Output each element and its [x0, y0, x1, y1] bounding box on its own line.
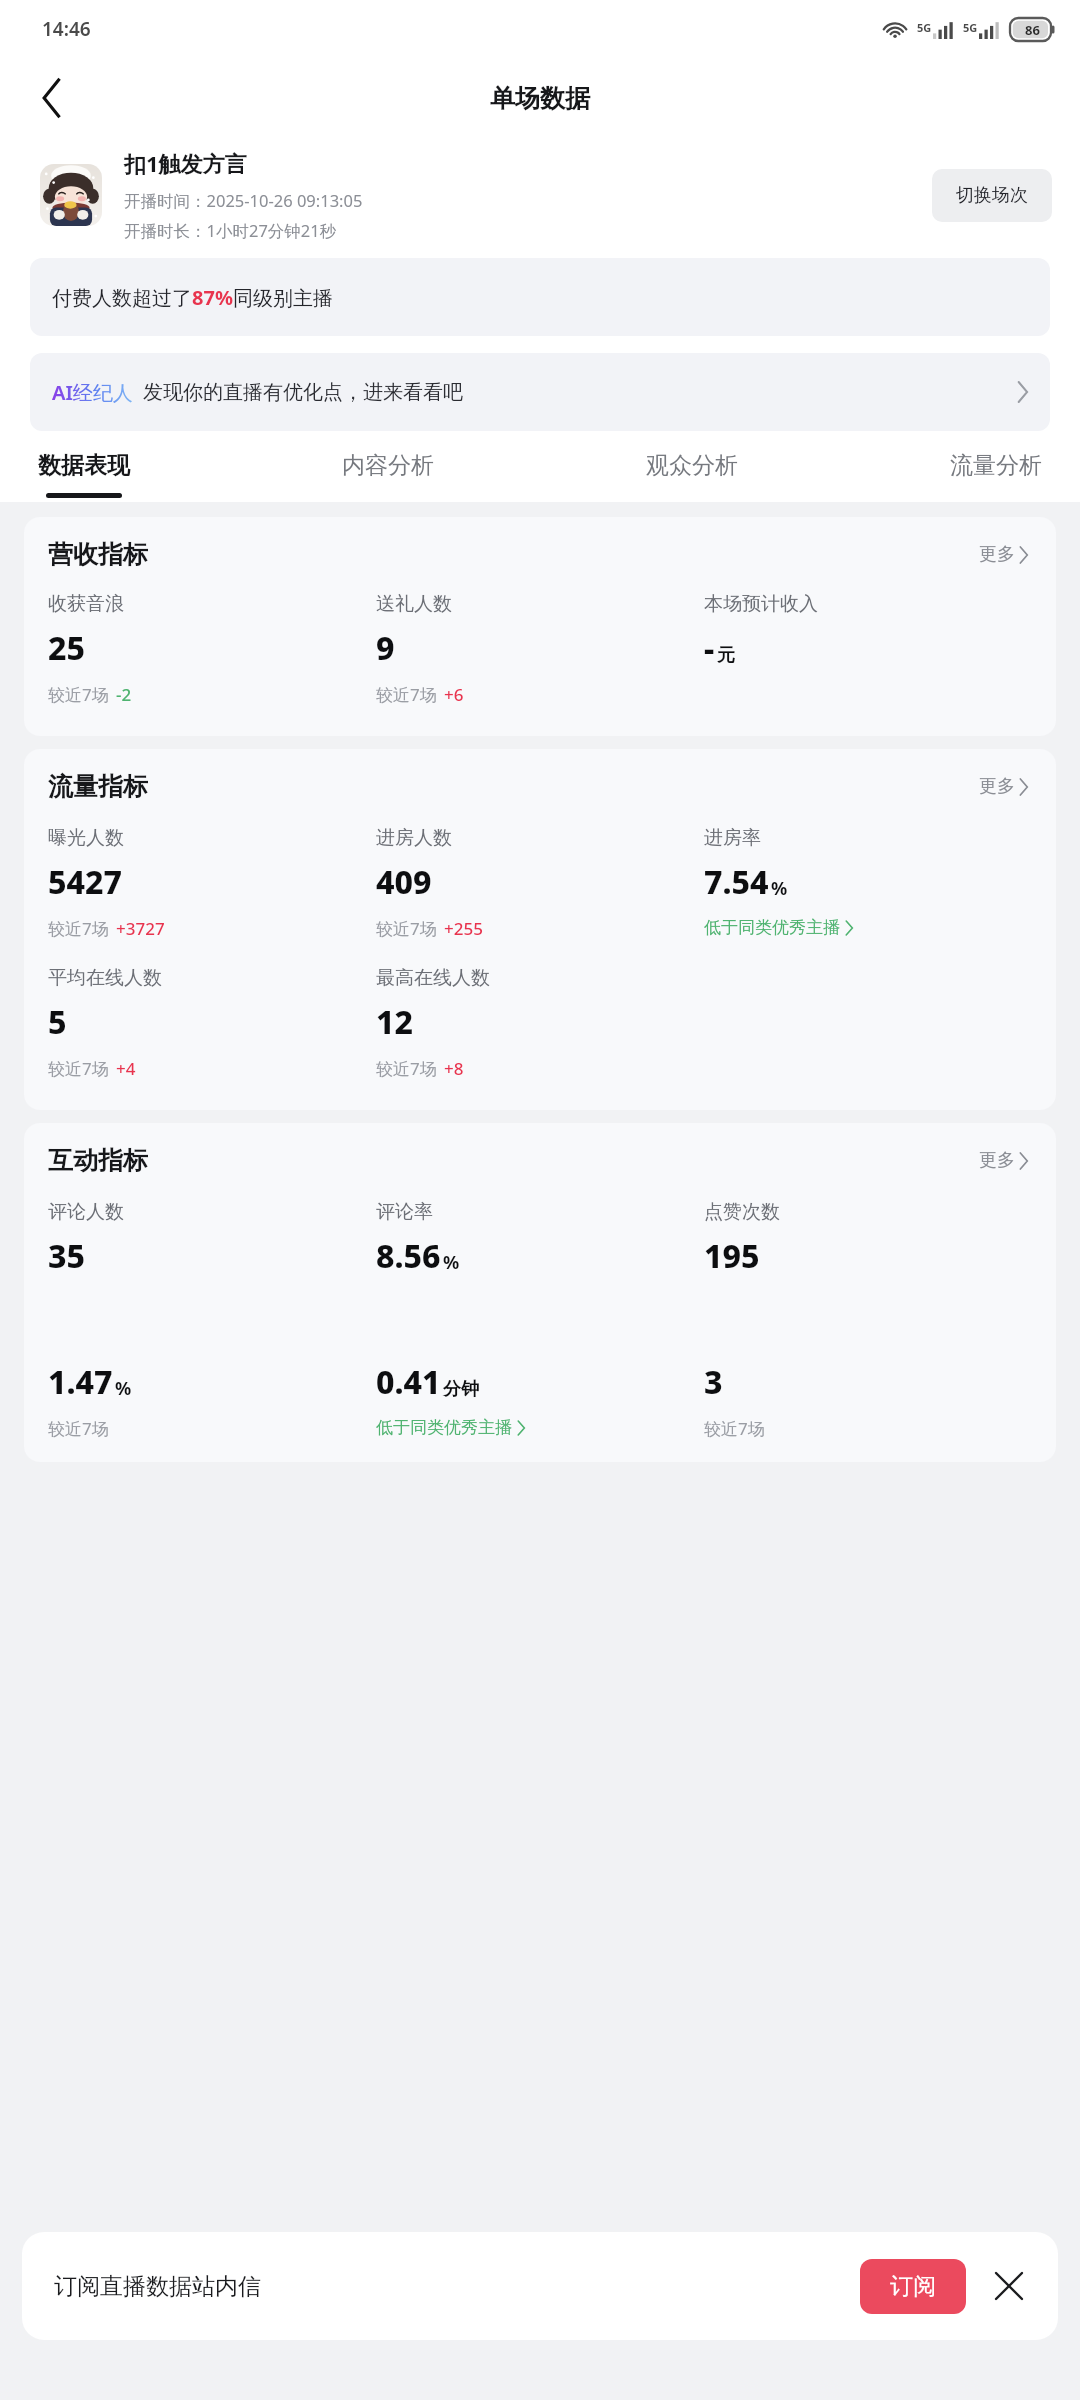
- button[interactable]: 内容分析: [334, 451, 442, 498]
- staticText: 195: [704, 1234, 760, 1278]
- staticText: 最高在线人数: [376, 966, 490, 990]
- staticText: 较近7场: [48, 1057, 109, 1080]
- staticText: 12: [376, 1000, 413, 1044]
- staticText: 数据表现: [38, 451, 130, 480]
- staticText: 评论率: [376, 1200, 433, 1224]
- staticText: 1.47: [48, 1360, 113, 1404]
- staticText: 9: [376, 626, 395, 670]
- button[interactable]: AI经纪人: [30, 353, 1050, 431]
- staticText: 低于同类优秀主播: [704, 917, 840, 938]
- staticText: 8.56: [376, 1234, 441, 1278]
- staticText: 409: [376, 860, 432, 904]
- staticText: 点赞次数: [704, 1200, 780, 1224]
- staticText: +6: [444, 683, 464, 706]
- staticText: 更多: [979, 543, 1015, 566]
- staticText: 5G: [963, 20, 978, 35]
- staticText: %: [115, 1376, 132, 1401]
- staticText: 元: [717, 644, 735, 667]
- staticText: 开播时间：2025-10-26 09:13:05: [124, 189, 363, 212]
- button[interactable]: Back: [24, 70, 80, 126]
- staticText: 评论人数: [48, 1200, 124, 1224]
- staticText: 低于同类优秀主播: [376, 1417, 512, 1438]
- button[interactable]: 观众分析: [638, 451, 746, 498]
- staticText: 更多: [979, 775, 1015, 798]
- staticText: +255: [444, 917, 483, 940]
- staticText: 收获音浪: [48, 592, 124, 616]
- staticText: 内容分析: [342, 451, 434, 480]
- staticText: 较近7场: [376, 683, 437, 706]
- staticText: 较近7场: [48, 1417, 109, 1440]
- staticText: 较近7场: [48, 683, 109, 706]
- staticText: 3: [704, 1360, 723, 1404]
- staticText: 较近7场: [376, 1057, 437, 1080]
- button[interactable]: 付费人数超过了87%同级别主播: [30, 258, 1050, 336]
- staticText: 较近7场: [48, 917, 109, 940]
- staticText: 送礼人数: [376, 592, 452, 616]
- staticText: 较近7场: [376, 917, 437, 940]
- staticText: 观众分析: [646, 451, 738, 480]
- staticText: 较近7场: [704, 1417, 765, 1440]
- staticText: 互动指标: [48, 1145, 148, 1176]
- button[interactable]: 更多: [975, 1145, 1032, 1176]
- staticText: 订阅直播数据站内信: [54, 2272, 261, 2301]
- staticText: 更多: [979, 1149, 1015, 1172]
- staticText: 发现你的直播有优化点，进来看看吧: [143, 380, 463, 405]
- staticText: 0.41: [376, 1360, 441, 1404]
- button[interactable]: 低于同类优秀主播: [704, 917, 853, 938]
- staticText: 扣1触发方言: [124, 148, 247, 178]
- staticText: 流量指标: [48, 771, 148, 802]
- staticText: 进房人数: [376, 826, 452, 850]
- button[interactable]: 订阅: [860, 2259, 966, 2314]
- staticText: %: [771, 876, 788, 901]
- staticText: 切换场次: [956, 184, 1028, 207]
- staticText: 25: [48, 626, 85, 670]
- staticText: 开播时长：1小时27分钟21秒: [124, 219, 337, 242]
- staticText: 86: [1025, 21, 1040, 39]
- staticText: 流量分析: [950, 451, 1042, 480]
- staticText: +8: [444, 1057, 464, 1080]
- staticText: 5: [48, 1000, 67, 1044]
- button[interactable]: 更多: [975, 771, 1032, 802]
- staticText: 35: [48, 1234, 85, 1278]
- button[interactable]: 低于同类优秀主播: [376, 1417, 525, 1438]
- staticText: 单场数据: [490, 83, 590, 114]
- staticText: AI经纪人: [52, 379, 133, 406]
- staticText: 付费人数超过了87%同级别主播: [52, 284, 333, 311]
- staticText: 订阅: [890, 2272, 936, 2301]
- staticText: 5427: [48, 860, 122, 904]
- button[interactable]: Close: [984, 2261, 1034, 2311]
- staticText: -: [704, 626, 715, 670]
- button[interactable]: 流量分析: [942, 451, 1050, 498]
- staticText: 进房率: [704, 826, 761, 850]
- staticText: +3727: [116, 917, 165, 940]
- staticText: 分钟: [443, 1378, 479, 1401]
- staticText: 营收指标: [48, 539, 148, 570]
- staticText: +4: [116, 1057, 136, 1080]
- staticText: 7.54: [704, 860, 769, 904]
- button[interactable]: 更多: [975, 539, 1032, 570]
- staticText: 14:46: [42, 16, 91, 42]
- button[interactable]: 数据表现: [30, 451, 138, 498]
- staticText: 曝光人数: [48, 826, 124, 850]
- button[interactable]: 切换场次: [932, 169, 1052, 222]
- staticText: %: [443, 1250, 460, 1275]
- staticText: -2: [116, 683, 132, 706]
- staticText: 5G: [917, 20, 932, 35]
- staticText: 平均在线人数: [48, 966, 162, 990]
- staticText: 本场预计收入: [704, 592, 818, 616]
